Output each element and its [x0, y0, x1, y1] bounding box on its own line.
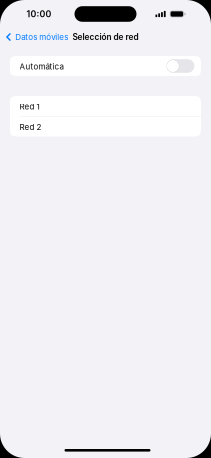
button[interactable]: Red 1	[10, 96, 201, 116]
staticText: Red 1	[20, 102, 40, 111]
staticText: 10:00	[26, 9, 51, 19]
button[interactable]: Red 2	[10, 116, 201, 136]
button[interactable]: Automática	[10, 56, 201, 76]
staticText: Red 2	[20, 122, 42, 132]
button[interactable]: Volver a Datos móviles	[0, 29, 71, 45]
staticText: Automática	[20, 62, 64, 71]
staticText: Datos móviles	[15, 32, 68, 42]
staticText: Selección de red	[72, 32, 138, 42]
